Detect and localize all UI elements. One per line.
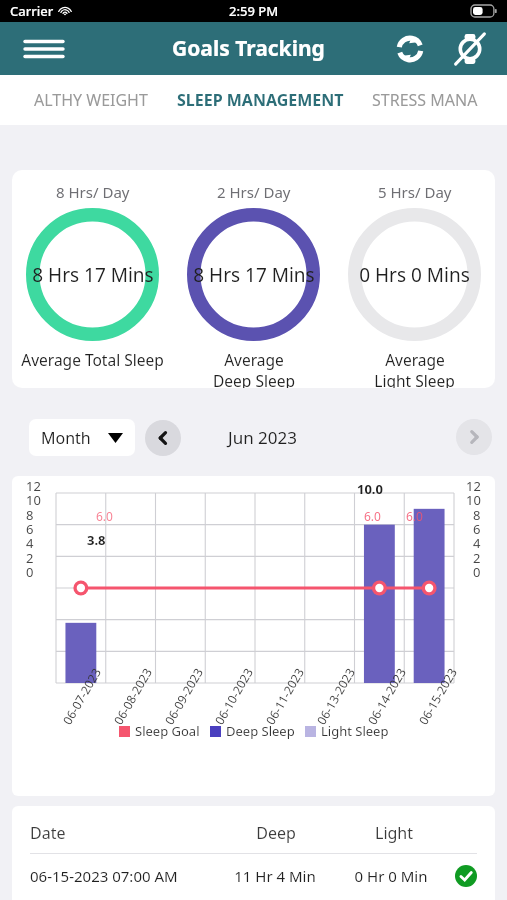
staticText: 0 xyxy=(473,563,481,581)
staticText: Deep Sleep xyxy=(226,722,295,740)
staticText: SLEEP MANAGEMENT xyxy=(177,89,344,111)
staticText: Date xyxy=(30,822,217,844)
staticText: 3.8 xyxy=(87,531,106,549)
staticText: 6.0 xyxy=(406,508,423,524)
staticText: Jun 2023 xyxy=(228,426,297,449)
button[interactable]: STRESS MANA xyxy=(372,75,507,125)
staticText: 4 xyxy=(473,534,481,552)
staticText: 06-11-2023 xyxy=(262,665,307,727)
button[interactable]: SLEEP MANAGEMENT xyxy=(148,75,372,125)
staticText: Sleep Goal xyxy=(135,722,200,740)
button[interactable]: Month xyxy=(29,419,135,456)
staticText: 8 xyxy=(473,506,481,524)
staticText: Carrier xyxy=(10,2,54,20)
staticText: 2:59 PM xyxy=(229,2,279,20)
button[interactable]: Menu xyxy=(22,27,66,71)
staticText: 0 Hrs 0 Mins xyxy=(359,262,470,288)
staticText: Light xyxy=(335,822,453,844)
staticText: 2 xyxy=(26,549,34,567)
button[interactable]: 06-15-2023 07:00 AM xyxy=(12,854,495,898)
staticText: 0 Hr 0 Min xyxy=(333,866,449,886)
staticText: 12 xyxy=(26,477,41,495)
staticText: 6 xyxy=(473,520,481,538)
staticText: 06-15-2023 07:00 AM xyxy=(30,866,217,886)
staticText: 2 Hrs/ Day xyxy=(217,182,291,202)
button[interactable]: ALTHY WEIGHT xyxy=(0,75,148,125)
staticText: 8 xyxy=(26,506,34,524)
staticText: 6.0 xyxy=(96,508,113,524)
staticText: 06-08-2023 xyxy=(110,665,155,727)
staticText: STRESS MANA xyxy=(372,89,478,111)
staticText: Light Sleep xyxy=(374,370,455,388)
staticText: 2 xyxy=(473,549,481,567)
staticText: 6 xyxy=(26,520,34,538)
button[interactable]: Next month xyxy=(456,419,492,455)
staticText: 5 Hrs/ Day xyxy=(378,182,452,202)
staticText: 12 xyxy=(466,477,481,495)
staticText: ALTHY WEIGHT xyxy=(34,89,148,111)
staticText: 06-10-2023 xyxy=(211,665,256,727)
staticText: 6.0 xyxy=(364,508,381,524)
staticText: Light Sleep xyxy=(321,722,389,740)
button[interactable]: Previous month xyxy=(145,420,181,456)
button[interactable]: Refresh xyxy=(387,26,433,72)
staticText: 06-07-2023 xyxy=(59,665,104,727)
button[interactable]: Watch disconnected xyxy=(447,26,493,72)
staticText: 06-13-2023 xyxy=(313,665,358,727)
staticText: 4 xyxy=(26,534,34,552)
staticText: 06-15-2023 xyxy=(415,665,460,727)
staticText: 8 Hrs/ Day xyxy=(56,182,130,202)
staticText: Deep Sleep xyxy=(213,370,295,388)
staticText: Average Total Sleep xyxy=(21,349,164,370)
staticText: 06-09-2023 xyxy=(161,665,206,727)
staticText: 11 Hr 4 Min xyxy=(217,866,333,886)
staticText: 10 xyxy=(26,491,41,509)
staticText: 10.0 xyxy=(357,480,383,498)
staticText: 0 xyxy=(26,563,34,581)
staticText: 8 Hrs 17 Mins xyxy=(32,262,154,288)
staticText: Goals Tracking xyxy=(172,34,325,63)
staticText: Average xyxy=(224,349,284,370)
staticText: Month xyxy=(41,427,91,449)
staticText: 8 Hrs 17 Mins xyxy=(193,262,315,288)
staticText: 10 xyxy=(466,491,481,509)
staticText: Average xyxy=(385,349,445,370)
staticText: Deep xyxy=(217,822,335,844)
staticText: 06-14-2023 xyxy=(364,665,409,727)
